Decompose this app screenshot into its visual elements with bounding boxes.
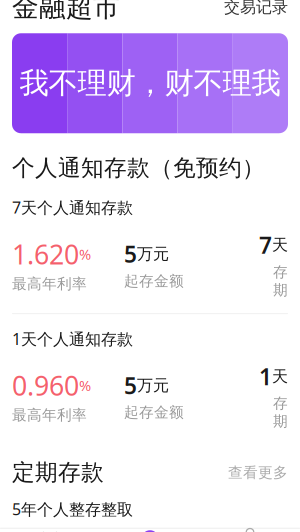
staticText: 5年个人整存整取 (12, 498, 133, 520)
button[interactable]: 我不理财，财不理我 (12, 33, 288, 133)
staticText: 万元 (137, 244, 169, 264)
staticText: 天 (272, 235, 288, 255)
staticText: 1 (259, 361, 272, 391)
staticText: 金融超市 (12, 0, 120, 24)
button[interactable]: 查看更多 (216, 458, 288, 486)
staticText: 存期 (273, 394, 288, 430)
staticText: 最高年利率 (12, 275, 87, 293)
staticText: 最高年利率 (12, 406, 87, 424)
staticText: 7天个人通知存款 (12, 197, 133, 218)
staticText: 1.620 (12, 236, 79, 272)
staticText: 起存金额 (124, 272, 184, 290)
staticText: 我不理财，财不理我 (19, 65, 280, 101)
staticText: % (79, 376, 91, 395)
staticText: 7 (259, 230, 272, 260)
button[interactable]: 1天个人通知存款 (0, 314, 300, 444)
staticText: 存期 (273, 263, 288, 299)
button[interactable]: 交易记录 (212, 0, 288, 23)
staticText: 1天个人通知存款 (12, 328, 133, 349)
staticText: 定期存款 (12, 459, 104, 486)
staticText: 交易记录 (224, 0, 288, 17)
button[interactable]: 我的 (200, 529, 300, 532)
staticText: 天 (272, 367, 288, 386)
staticText: 5 (124, 370, 137, 400)
staticText: 0.960 (12, 368, 79, 403)
staticText: ¥ (145, 528, 154, 532)
staticText: 5 (124, 239, 137, 269)
staticText: 查看更多 (228, 463, 288, 481)
staticText: 个人通知存款（免预约） (12, 154, 265, 182)
button[interactable]: ¥ (100, 529, 200, 532)
staticText: 万元 (137, 376, 169, 395)
staticText: 起存金额 (124, 403, 184, 421)
staticText: % (79, 244, 91, 264)
button[interactable]: 7天个人通知存款 (0, 183, 300, 313)
